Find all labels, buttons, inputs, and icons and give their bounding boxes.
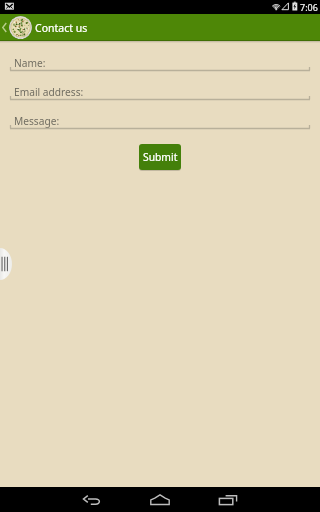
staticText: Email address: <box>14 85 84 99</box>
button[interactable]: Email address: <box>0 86 320 102</box>
button[interactable]: Back <box>70 487 114 512</box>
button[interactable]: Home <box>138 487 182 512</box>
button[interactable]: Recent apps <box>206 487 250 512</box>
button[interactable]: Navigate up <box>0 14 9 41</box>
button[interactable]: App icon <box>9 16 32 39</box>
button[interactable]: Open navigation drawer <box>0 248 12 280</box>
button[interactable]: Name: <box>0 57 320 73</box>
staticText: Message: <box>14 114 60 128</box>
staticText: Name: <box>14 56 46 70</box>
staticText: Submit <box>143 150 178 164</box>
button[interactable]: Message: <box>0 115 320 131</box>
staticText: Contact us <box>35 21 88 35</box>
button[interactable]: Submit <box>139 144 181 170</box>
staticText: 7:06 <box>300 1 318 13</box>
